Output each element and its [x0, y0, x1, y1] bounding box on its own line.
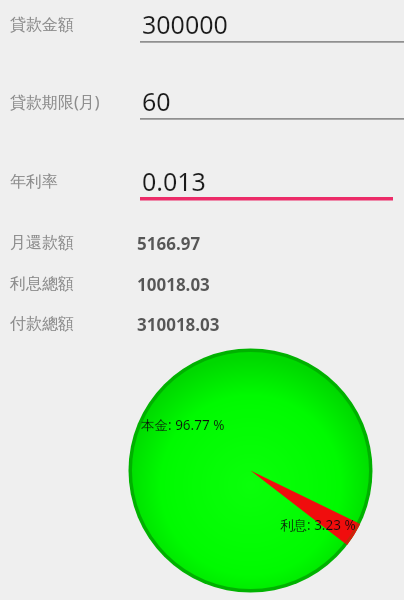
staticText: 310018.03	[137, 313, 220, 336]
staticText: 月還款額	[10, 233, 74, 253]
button[interactable]: 貸款金額	[0, 10, 136, 40]
staticText: 60	[142, 84, 171, 118]
staticText: 本金: 96.77 %	[141, 416, 225, 434]
button[interactable]: 年利率	[0, 167, 136, 197]
staticText: 利息總額	[10, 274, 74, 294]
button[interactable]: 300000	[140, 5, 404, 43]
staticText: 利息: 3.23 %	[280, 516, 356, 534]
button[interactable]: 60	[140, 82, 404, 120]
button[interactable]: 利息總額	[0, 268, 404, 300]
staticText: 付款總額	[10, 314, 74, 334]
staticText: 10018.03	[137, 273, 210, 296]
button[interactable]: 0.013	[140, 162, 393, 200]
staticText: 貸款金額	[10, 15, 74, 35]
staticText: 5166.97	[137, 232, 201, 255]
button[interactable]: 月還款額	[0, 227, 404, 259]
staticText: 年利率	[10, 172, 58, 192]
button[interactable]: Principal and interest pie chart	[126, 346, 375, 595]
staticText: 貸款期限(月)	[10, 91, 100, 113]
staticText: 0.013	[142, 164, 206, 198]
button[interactable]: 付款總額	[0, 308, 404, 340]
staticText: 300000	[142, 7, 228, 41]
button[interactable]: 貸款期限(月)	[0, 87, 136, 117]
